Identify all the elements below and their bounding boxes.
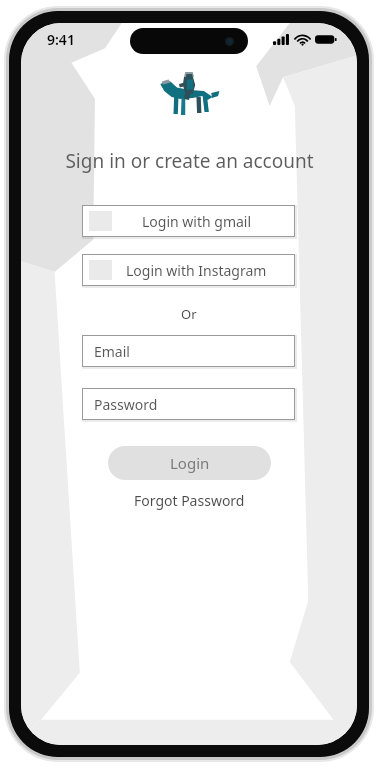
staticText: Email <box>94 342 130 361</box>
button[interactable]: Forgot Password <box>128 489 251 512</box>
staticText: Forgot Password <box>134 491 245 510</box>
button[interactable]: Login with Instagram <box>82 254 295 286</box>
staticText: Login with gmail <box>142 212 252 231</box>
button[interactable]: Login with gmail <box>82 205 295 237</box>
staticText: Password <box>94 395 158 414</box>
button[interactable]: Email <box>82 335 295 367</box>
staticText: 9:41 <box>47 30 75 49</box>
button[interactable]: Password <box>82 388 295 420</box>
staticText: Sign in or create an account <box>65 148 314 174</box>
button[interactable]: Login <box>108 446 271 480</box>
staticText: Login <box>170 453 210 473</box>
other: App logo <box>158 71 220 121</box>
staticText: Login with Instagram <box>126 261 267 280</box>
staticText: Or <box>181 305 197 323</box>
